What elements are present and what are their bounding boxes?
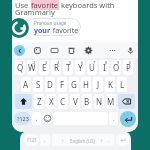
button[interactable]: F [57,77,67,92]
staticText: O [113,62,120,73]
staticText: A [23,79,29,90]
button[interactable]: Z [34,94,44,109]
button[interactable]: A [21,77,31,92]
button[interactable]: T [63,60,73,75]
staticText: N [96,96,103,107]
staticText: keyboards with [59,0,115,10]
staticText: Pronoun usage [34,20,67,26]
staticText: , [44,137,46,144]
button[interactable]: C [58,94,68,109]
button[interactable]: , [32,112,41,125]
staticText: K [108,79,113,90]
staticText: S [36,79,41,90]
staticText: Z [37,96,42,107]
button[interactable]: Microphone [125,45,135,55]
staticText: X [49,96,54,107]
staticText: 4 [57,60,60,65]
staticText: B [84,96,90,107]
staticText: Grammarly [15,7,55,17]
button[interactable]: J [93,77,103,92]
staticText: 1 [21,60,24,65]
button[interactable]: L [117,77,127,92]
staticText: I [103,62,106,73]
button[interactable]: ?123 [24,134,39,146]
button[interactable]: I [99,60,109,75]
button[interactable]: Enter [120,111,136,127]
staticText: W [28,62,36,73]
button[interactable]: . [104,134,114,146]
button[interactable]: Clipboard [66,45,76,55]
staticText: favorite [51,26,79,36]
staticText: 7 [93,60,96,65]
staticText: . [108,137,110,144]
staticText: ?123 [17,115,29,122]
staticText: T [66,62,71,73]
staticText: L [120,79,125,90]
staticText: F [60,79,65,90]
button[interactable]: Space [52,134,112,146]
staticText: 9 [117,60,120,65]
staticText: E [42,62,47,73]
staticText: favorite [31,0,59,10]
button[interactable]: , [40,134,50,146]
button[interactable]: GIF [49,45,59,55]
button[interactable]: Shift [15,94,32,109]
button[interactable]: B [82,94,92,109]
button[interactable]: P [123,60,133,75]
button[interactable]: K [105,77,115,92]
button[interactable]: Back [14,45,25,56]
staticText: 3 [45,60,48,65]
staticText: › [101,137,103,144]
button[interactable]: U [87,60,97,75]
staticText: 0 [129,60,132,65]
button[interactable]: H [81,77,91,92]
staticText: V [73,96,78,107]
button[interactable]: D [45,77,55,92]
button[interactable]: R [51,60,61,75]
staticText: 2 [33,60,36,65]
button[interactable]: M [106,94,116,109]
staticText: . [113,115,115,123]
staticText: ?123 [27,137,37,143]
staticText: D [47,79,53,90]
button[interactable]: S [33,77,43,92]
staticText: Y [78,62,83,73]
staticText: U [89,62,95,73]
button[interactable]: Stickers [32,45,42,55]
button[interactable]: Emoji [42,113,53,124]
button[interactable]: O [111,60,121,75]
button[interactable]: V [70,94,80,109]
staticText: 6 [81,60,84,65]
staticText: your [34,26,51,36]
staticText: G [71,79,77,90]
button[interactable]: W [27,60,37,75]
staticText: P [126,62,131,73]
button[interactable]: ?123 [14,112,31,125]
staticText: 8 [105,60,108,65]
staticText: English (US) [70,138,95,144]
staticText: Use [15,0,31,10]
button[interactable]: Enter [116,134,129,146]
staticText: R [54,62,59,73]
staticText: ‹ [62,137,64,144]
staticText: H [83,79,89,90]
button[interactable]: More [107,45,117,55]
button[interactable]: X [46,94,56,109]
staticText: C [60,96,66,107]
button[interactable]: Pronoun usage [26,18,81,36]
button[interactable]: G [69,77,79,92]
button[interactable]: Grammarly [12,17,30,39]
staticText: Q [17,62,24,73]
staticText: J [97,79,100,90]
button[interactable]: E [39,60,49,75]
staticText: , [36,115,38,123]
button[interactable]: Q [15,60,25,75]
staticText: 5 [69,60,72,65]
button[interactable]: Settings [83,45,93,55]
staticText: M [107,96,115,107]
button[interactable]: . [109,112,118,125]
button[interactable]: Backspace [118,94,135,109]
button[interactable]: N [94,94,104,109]
button[interactable]: Y [75,60,85,75]
